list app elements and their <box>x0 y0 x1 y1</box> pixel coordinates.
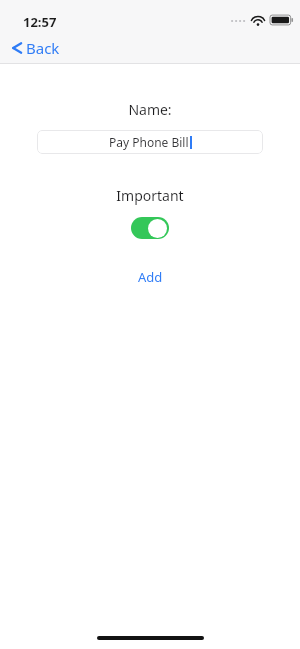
button[interactable]: Add <box>130 265 171 289</box>
staticText: Pay Phone Bill <box>109 134 189 150</box>
button[interactable]: Pay Phone Bill <box>37 130 263 154</box>
staticText: Back <box>26 38 60 58</box>
button[interactable]: Back <box>8 35 64 61</box>
button[interactable]: Important toggle, on <box>131 217 169 239</box>
staticText: 12:57 <box>23 13 57 31</box>
staticText: Important <box>116 186 184 205</box>
staticText: Name: <box>128 100 172 119</box>
staticText: Add <box>138 268 163 286</box>
